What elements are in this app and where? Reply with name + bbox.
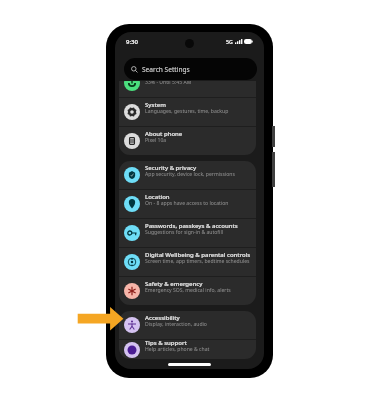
button[interactable]: About phone — [119, 127, 256, 155]
staticText: Languages, gestures, time, backup — [145, 108, 229, 115]
staticText: Location — [145, 193, 170, 201]
staticText: Display, interaction, audio — [145, 321, 207, 328]
staticText: Safety & emergency — [145, 280, 203, 288]
staticText: Digital Wellbeing & parental controls — [145, 251, 251, 259]
staticText: System — [145, 101, 166, 109]
staticText: Emergency SOS, medical info, alerts — [145, 287, 231, 294]
staticText: Help articles, phone & chat — [145, 346, 210, 353]
button[interactable]: Safety & emergency — [119, 277, 256, 305]
staticText: 5G — [226, 38, 233, 45]
staticText: Suggestions for sign-in & autofill — [145, 229, 224, 236]
staticText: App security, device lock, permissions — [145, 171, 235, 178]
button[interactable]: Accessibility — [119, 311, 256, 339]
staticText: On - 8 apps have access to location — [145, 200, 229, 207]
staticText: Screen time, app timers, bedtime schedul… — [145, 258, 250, 265]
button[interactable]: Security & privacy — [119, 161, 256, 189]
button[interactable]: System — [119, 98, 256, 126]
staticText: Passwords, passkeys & accounts — [145, 222, 238, 230]
staticText: Tips & support — [145, 339, 187, 347]
staticText: Security & privacy — [145, 164, 197, 172]
staticText: Accessibility — [145, 314, 180, 322]
staticText: Pixel 10a — [145, 137, 167, 144]
staticText: Search Settings — [142, 65, 190, 74]
staticText: About phone — [145, 130, 183, 138]
button[interactable]: Search Settings — [124, 58, 257, 80]
button[interactable]: Passwords, passkeys & accounts — [119, 219, 256, 247]
staticText: 9:30 — [126, 38, 138, 46]
other: Pointer to Accessibility — [76, 304, 126, 334]
staticText: 33% - Until 5:45 AM — [145, 81, 192, 86]
button[interactable]: Battery — [119, 81, 256, 97]
button[interactable]: Location — [119, 190, 256, 218]
button[interactable]: Digital Wellbeing & parental controls — [119, 248, 256, 276]
button[interactable]: Tips & support — [119, 340, 256, 359]
